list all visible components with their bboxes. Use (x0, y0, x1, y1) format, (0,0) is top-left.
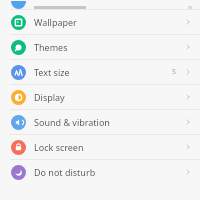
button[interactable]: Wallpaper (0, 10, 200, 34)
other: Open Themes (184, 43, 192, 51)
staticText: Text size (34, 66, 70, 78)
staticText: S (172, 67, 176, 77)
button[interactable]: Text size (0, 60, 200, 84)
button[interactable]: Do not disturb (0, 160, 200, 184)
staticText: Sound & vibration (34, 116, 110, 128)
staticText: Themes (34, 41, 68, 53)
staticText: Wallpaper (34, 16, 77, 28)
button[interactable]: Lock screen (0, 135, 200, 159)
other: Open Lock screen (184, 143, 192, 151)
staticText: Do not disturb (34, 166, 96, 178)
other: Open Display (184, 93, 192, 101)
button[interactable]: Display (0, 85, 200, 109)
other: Open Do not disturb (184, 168, 192, 176)
button[interactable]: Sound & vibration (0, 110, 200, 134)
other: Open Text size (184, 68, 192, 76)
button[interactable]: Themes (0, 35, 200, 59)
staticText: Display (34, 91, 65, 103)
button[interactable]: Notifications (0, 0, 200, 9)
other: Open Wallpaper (184, 18, 192, 26)
other: Open Sound & vibration (184, 118, 192, 126)
staticText: Lock screen (34, 141, 84, 153)
